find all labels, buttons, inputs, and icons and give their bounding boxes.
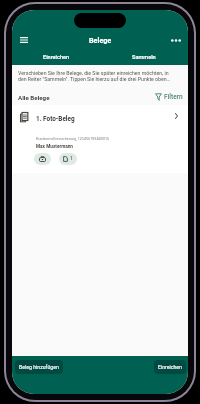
button[interactable]: Open receipt	[169, 109, 183, 123]
button[interactable]	[34, 153, 51, 165]
button[interactable]: More options	[167, 31, 185, 49]
button[interactable]: Beleg hinzufügen	[15, 360, 63, 374]
staticText: Filtern	[164, 93, 183, 101]
button[interactable]: Einreichen	[154, 360, 186, 374]
button[interactable]: Einreichen	[12, 49, 100, 65]
button[interactable]: 1. Foto-Beleg	[12, 105, 188, 173]
staticText: 1. Foto-Beleg	[36, 115, 75, 123]
button[interactable]: 1	[59, 153, 77, 165]
button[interactable]: Menu	[14, 30, 34, 50]
button[interactable]: Sammeln	[100, 49, 188, 65]
staticText: Einreichen	[43, 54, 70, 61]
staticText: Verschieben Sie Ihre Belege, die Sie spä…	[18, 70, 186, 82]
staticText: Alle Belege	[18, 94, 50, 101]
staticText: Beleg hinzufügen	[19, 364, 59, 370]
staticText: 1	[70, 156, 73, 162]
button[interactable]: Filtern	[152, 91, 186, 103]
staticText: Belege	[89, 36, 112, 44]
staticText: Krankenvollversicherung, 123456789A00016	[36, 137, 110, 141]
staticText: Einreichen	[158, 364, 182, 370]
staticText: Sammeln	[132, 54, 156, 61]
staticText: Max Mustermann	[36, 144, 73, 150]
